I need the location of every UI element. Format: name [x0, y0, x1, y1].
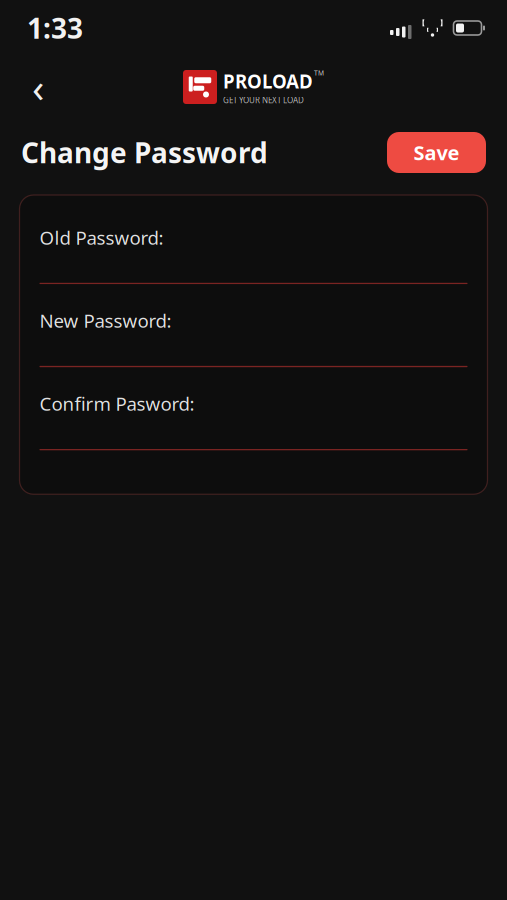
staticText: Change Password — [21, 133, 268, 171]
staticText: Old Password: — [39, 225, 163, 250]
button[interactable]: Back — [16, 65, 60, 109]
staticText: Confirm Pasword: — [39, 391, 194, 416]
staticText: New Password: — [39, 308, 171, 333]
button[interactable]: Confirm Pasword: — [39, 391, 467, 474]
button[interactable]: Save — [387, 132, 486, 173]
button[interactable]: New Password: — [39, 308, 467, 391]
staticText: GET YOUR NEXT LOAD — [223, 95, 304, 105]
staticText: Save — [413, 139, 459, 166]
button[interactable]: Old Password: — [39, 225, 467, 308]
staticText: 1:33 — [27, 9, 83, 47]
staticText: PROLOAD — [223, 68, 313, 94]
staticText: TM — [314, 68, 324, 77]
staticText: ‹ — [32, 60, 44, 113]
